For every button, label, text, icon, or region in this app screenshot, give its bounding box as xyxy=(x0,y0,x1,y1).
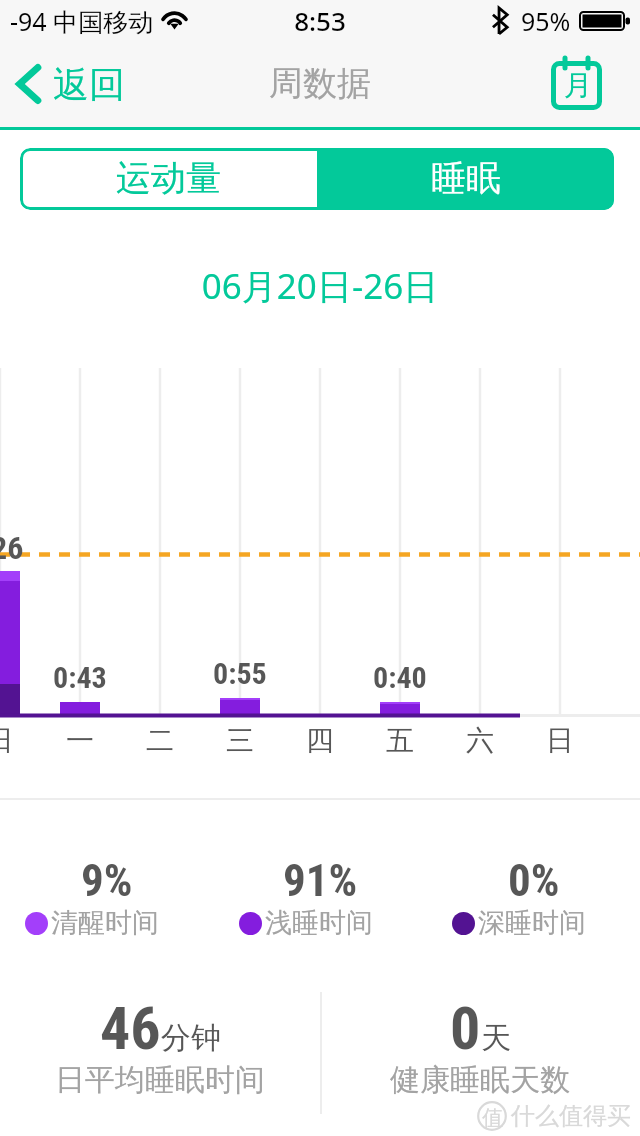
staticText: 9% xyxy=(81,854,133,907)
staticText: 健康睡眠天数 xyxy=(390,1061,570,1099)
staticText: 六 xyxy=(466,723,494,757)
staticText: 返回 xyxy=(53,62,125,107)
staticText: 什么值得买 xyxy=(511,1101,631,1131)
button[interactable]: 返回 xyxy=(10,53,131,116)
staticText: 深睡时间 xyxy=(478,906,586,940)
staticText: 分钟 xyxy=(161,1019,221,1057)
staticText: 睡眠 xyxy=(431,156,501,200)
staticText: 日平均睡眠时间 xyxy=(55,1061,265,1099)
staticText: 周数据 xyxy=(0,62,640,105)
staticText: 三 xyxy=(226,723,254,757)
staticText: 日 xyxy=(0,723,14,757)
staticText: 清醒时间 xyxy=(51,906,159,940)
staticText: 值 xyxy=(482,1105,503,1131)
staticText: 0% xyxy=(508,854,560,907)
button[interactable]: 睡眠 xyxy=(317,148,614,210)
staticText: 0:43 xyxy=(53,660,107,690)
staticText: 浅睡时间 xyxy=(265,906,373,940)
staticText: 四 xyxy=(306,723,334,757)
staticText: 五 xyxy=(386,723,414,757)
staticText: 26 xyxy=(0,529,24,567)
staticText: 月 xyxy=(564,68,592,103)
staticText: 0:55 xyxy=(213,656,267,686)
staticText: 06月20日-26日 xyxy=(0,262,640,310)
staticText: 二 xyxy=(146,723,174,757)
staticText: 日 xyxy=(546,723,574,757)
staticText: 8:53 xyxy=(0,3,640,38)
button[interactable]: Month view xyxy=(548,55,606,113)
staticText: 一 xyxy=(66,723,94,757)
staticText: 91% xyxy=(283,854,358,907)
staticText: 运动量 xyxy=(116,156,221,200)
staticText: 0:40 xyxy=(373,660,427,690)
staticText: 天 xyxy=(481,1019,511,1057)
staticText: 46 xyxy=(100,993,161,1063)
staticText: 95% xyxy=(521,4,571,38)
staticText: 0 xyxy=(450,993,481,1063)
button[interactable]: 运动量 xyxy=(20,148,317,210)
staticText: -94 中国移动 xyxy=(10,4,154,38)
